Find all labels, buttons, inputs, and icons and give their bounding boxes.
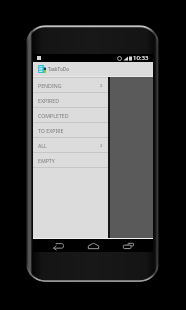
- staticText: PENDING: [38, 82, 62, 89]
- button[interactable]: ALL: [33, 138, 108, 152]
- staticText: COMPLETED: [38, 112, 69, 119]
- staticText: TO EXPIRE: [38, 127, 64, 134]
- staticText: EMPTY: [38, 157, 55, 164]
- button[interactable]: Recent apps: [118, 239, 138, 252]
- staticText: EXPIRED: [38, 97, 59, 104]
- button[interactable]: EMPTY: [33, 153, 108, 167]
- staticText: 2: [100, 82, 103, 88]
- button[interactable]: Back: [48, 239, 68, 252]
- staticText: 2: [100, 142, 103, 148]
- staticText: TaskToDo: [48, 66, 69, 72]
- button[interactable]: TO EXPIRE: [33, 123, 108, 137]
- button[interactable]: Home: [83, 239, 103, 252]
- staticText: 10:33: [133, 54, 149, 62]
- button[interactable]: COMPLETED: [33, 108, 108, 122]
- staticText: ALL: [38, 142, 47, 149]
- button[interactable]: EXPIRED: [33, 93, 108, 107]
- button[interactable]: PENDING: [33, 78, 108, 92]
